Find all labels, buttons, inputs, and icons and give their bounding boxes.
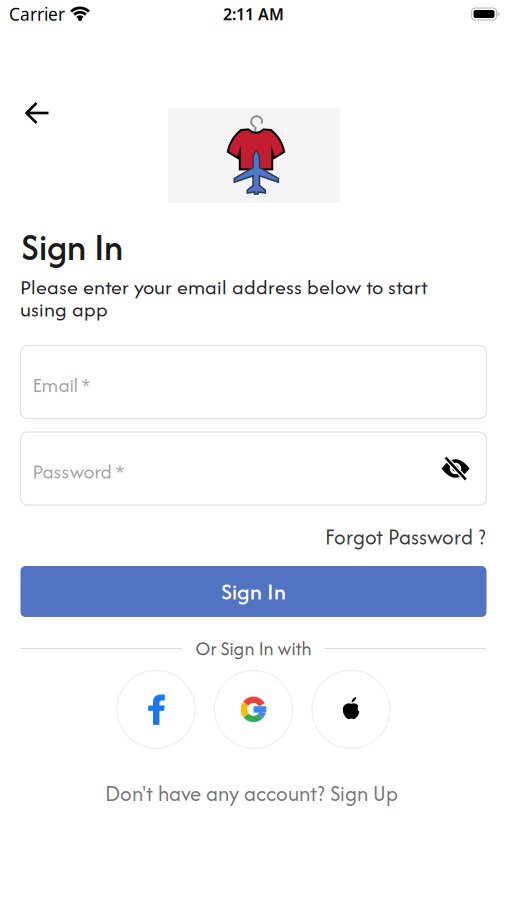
staticText: Don't have any account? xyxy=(105,778,325,809)
staticText: Sign Up xyxy=(330,778,398,809)
staticText: Forgot Password ? xyxy=(325,522,486,552)
button[interactable]: Sign Up xyxy=(330,778,398,809)
button[interactable]: Sign in with Facebook xyxy=(117,670,195,748)
staticText: Sign In xyxy=(221,575,286,607)
staticText: Password * xyxy=(32,457,124,486)
staticText: 2:11 AM xyxy=(223,3,284,25)
button[interactable]: Back xyxy=(24,102,50,124)
staticText: Please enter your email address below to… xyxy=(20,272,428,301)
button[interactable]: Sign in with Apple xyxy=(312,670,390,748)
button[interactable]: Sign in with Google xyxy=(214,670,292,748)
staticText: using app xyxy=(20,294,108,324)
staticText: Sign In xyxy=(21,221,123,273)
button[interactable]: Forgot Password ? xyxy=(325,522,486,552)
staticText: Or Sign In with xyxy=(195,635,311,662)
button[interactable]: Show password xyxy=(440,453,470,483)
staticText: Carrier xyxy=(9,2,65,25)
staticText: Email * xyxy=(32,371,90,399)
button[interactable]: Sign In xyxy=(20,566,486,617)
